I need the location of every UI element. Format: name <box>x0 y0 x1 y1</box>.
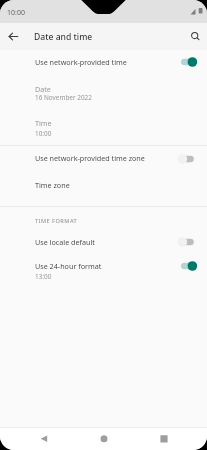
staticText: Use 24-hour format <box>35 261 102 271</box>
button[interactable]: Search <box>184 23 207 50</box>
staticText: TIME FORMAT <box>35 217 78 225</box>
staticText: Time zone <box>35 180 70 190</box>
button[interactable] <box>0 109 207 143</box>
button[interactable] <box>0 75 207 109</box>
staticText: 10:00 <box>35 129 52 138</box>
staticText: Date and time <box>34 31 93 43</box>
staticText: 13:00 <box>35 272 52 281</box>
button[interactable] <box>0 173 207 206</box>
staticText: Use network-provided time zone <box>35 153 145 163</box>
staticText: Use locale default <box>35 237 95 247</box>
staticText: 10:00 <box>7 8 25 18</box>
button[interactable] <box>0 254 207 288</box>
button[interactable] <box>0 146 207 173</box>
button[interactable]: Recent apps <box>134 427 194 450</box>
button[interactable] <box>0 50 207 75</box>
button[interactable] <box>0 231 207 254</box>
staticText: Date <box>35 84 51 94</box>
button[interactable]: Navigate up <box>2 23 25 50</box>
staticText: 16 November 2022 <box>35 93 92 102</box>
staticText: Time <box>35 118 52 128</box>
button[interactable]: Home <box>74 427 134 450</box>
staticText: Use network-provided time <box>35 57 127 67</box>
button[interactable]: Back <box>13 427 74 450</box>
